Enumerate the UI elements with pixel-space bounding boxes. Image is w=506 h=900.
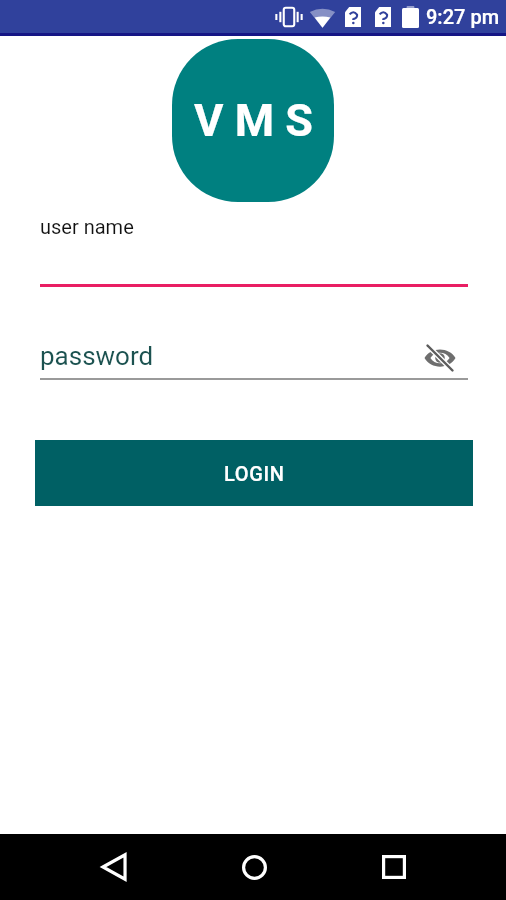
button[interactable]: Recent apps: [364, 837, 424, 897]
button[interactable]: Back: [84, 837, 144, 897]
staticText: V M S: [194, 94, 313, 147]
button[interactable]: user name: [40, 215, 468, 287]
button[interactable]: LOGIN: [35, 440, 473, 506]
button[interactable]: password: [40, 341, 361, 371]
staticText: user name: [40, 215, 134, 238]
button[interactable]: Show password: [418, 339, 462, 377]
button[interactable]: Home: [224, 837, 284, 897]
staticText: 9:27 pm: [426, 5, 500, 28]
staticText: LOGIN: [224, 462, 285, 485]
